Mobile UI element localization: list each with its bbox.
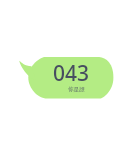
staticText: 你是誰 [68, 86, 85, 93]
staticText: 043 [53, 59, 90, 83]
button[interactable]: Message 043 你是誰 [18, 57, 114, 99]
